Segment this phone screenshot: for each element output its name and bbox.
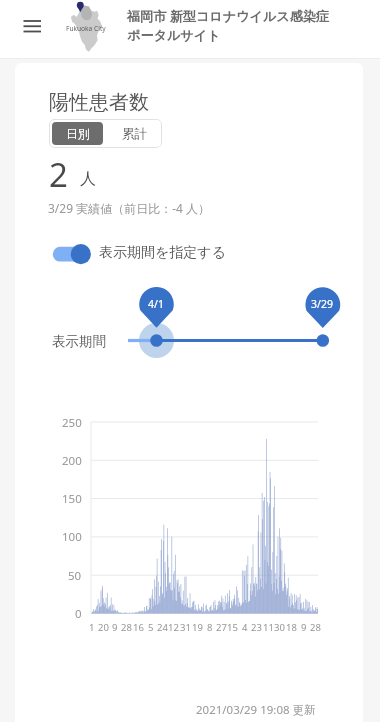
staticText: 人 bbox=[80, 169, 96, 189]
staticText: 表示期間を指定する bbox=[99, 244, 226, 262]
staticText: 4/1 bbox=[148, 297, 164, 311]
staticText: 福岡市 新型コロナウイルス感染症 ポータルサイト bbox=[127, 7, 329, 44]
staticText: 28 bbox=[310, 621, 321, 634]
staticText: 2021/03/29 19:08 更新 bbox=[196, 702, 316, 718]
staticText: 12 bbox=[168, 621, 179, 634]
staticText: 30 bbox=[274, 621, 285, 634]
staticText: 50 bbox=[68, 568, 82, 584]
staticText: 2 bbox=[49, 152, 68, 197]
staticText: 31 bbox=[180, 621, 191, 634]
staticText: 4 bbox=[242, 621, 248, 634]
staticText: 24 bbox=[157, 621, 168, 634]
staticText: 16 bbox=[133, 621, 144, 634]
staticText: 0 bbox=[75, 606, 82, 622]
staticText: 1 bbox=[89, 621, 95, 634]
staticText: 23 bbox=[251, 621, 262, 634]
staticText: 9 bbox=[112, 621, 118, 634]
staticText: 日別 bbox=[66, 126, 90, 141]
staticText: 20 bbox=[98, 621, 109, 634]
staticText: 200 bbox=[62, 453, 82, 469]
staticText: 3/29 実績値（前日比：-4 人） bbox=[48, 200, 211, 216]
staticText: 19 bbox=[192, 621, 203, 634]
button[interactable]: 日別 bbox=[52, 122, 103, 145]
staticText: 表示期間 bbox=[52, 333, 106, 350]
staticText: 250 bbox=[62, 415, 82, 431]
staticText: 陽性患者数 bbox=[49, 90, 149, 115]
staticText: 5 bbox=[148, 621, 154, 634]
button[interactable]: 表示期間を指定する bbox=[44, 240, 98, 270]
staticText: Fukuoka City bbox=[66, 24, 106, 33]
button[interactable]: 累計 bbox=[103, 122, 159, 145]
staticText: 9 bbox=[301, 621, 307, 634]
staticText: 27 bbox=[216, 621, 227, 634]
staticText: 28 bbox=[121, 621, 132, 634]
staticText: 11 bbox=[263, 621, 274, 634]
staticText: 15 bbox=[227, 621, 238, 634]
staticText: 8 bbox=[207, 621, 213, 634]
button[interactable]: Menu bbox=[14, 13, 50, 45]
staticText: 3/29 bbox=[311, 297, 333, 311]
staticText: 100 bbox=[62, 529, 82, 545]
staticText: 累計 bbox=[122, 126, 147, 142]
staticText: 18 bbox=[286, 621, 297, 634]
staticText: 150 bbox=[62, 491, 82, 507]
